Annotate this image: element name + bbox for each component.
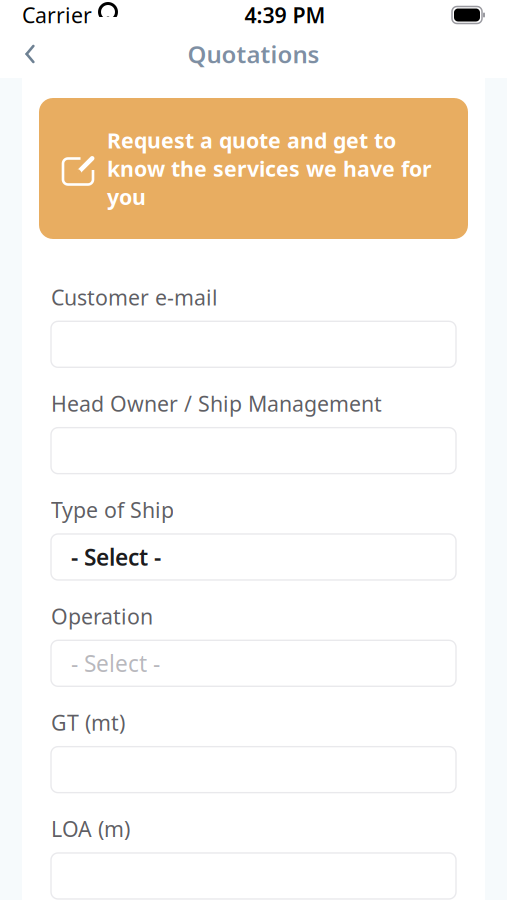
staticText: GT (mt) — [51, 708, 125, 737]
staticText: Operation — [51, 602, 153, 630]
button[interactable] — [51, 747, 456, 793]
staticText: Request a quote and get to know the serv… — [107, 126, 432, 211]
staticText: Head Owner / Ship Management — [51, 389, 382, 418]
staticText: Type of Ship — [51, 496, 174, 524]
button[interactable] — [51, 853, 456, 899]
button[interactable]: Request a quote and get to know the serv… — [39, 98, 468, 239]
button[interactable]: - Select - — [51, 534, 456, 580]
staticText: - Select - — [71, 542, 161, 572]
staticText: Quotations — [187, 38, 319, 70]
staticText: - Select - — [71, 648, 160, 678]
button[interactable] — [51, 428, 456, 474]
staticText: LOA (m) — [51, 815, 130, 843]
button[interactable] — [51, 321, 456, 367]
button[interactable]: - Select - — [51, 640, 456, 686]
button[interactable]: Back — [8, 34, 52, 74]
staticText: Carrier — [22, 1, 92, 29]
staticText: Customer e-mail — [51, 283, 218, 311]
staticText: 4:39 PM — [244, 1, 325, 29]
